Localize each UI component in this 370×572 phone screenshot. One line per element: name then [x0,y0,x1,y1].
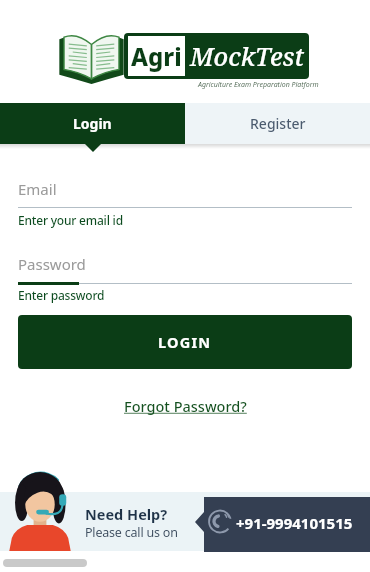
staticText: LOGIN [158,332,212,352]
staticText: Login [73,114,112,133]
staticText: MockTest [190,39,305,73]
staticText: Email [18,179,57,199]
staticText: Password [18,254,86,274]
button[interactable] [195,497,370,552]
staticText: Need Help? [85,504,168,524]
button[interactable]: Register [185,103,370,144]
staticText: Enter your email id [18,212,123,228]
staticText: Enter password [18,287,105,303]
staticText: Agriculture Exam Preparation Platform [198,80,319,90]
staticText: +91-9994101515 [236,513,353,533]
button[interactable]: Forgot Password? [124,396,247,416]
staticText: Agri [131,40,182,73]
staticText: Please call us on [85,524,178,541]
button[interactable]: LOGIN [18,315,352,369]
button[interactable]: Login [0,103,185,144]
staticText: Register [250,114,306,133]
